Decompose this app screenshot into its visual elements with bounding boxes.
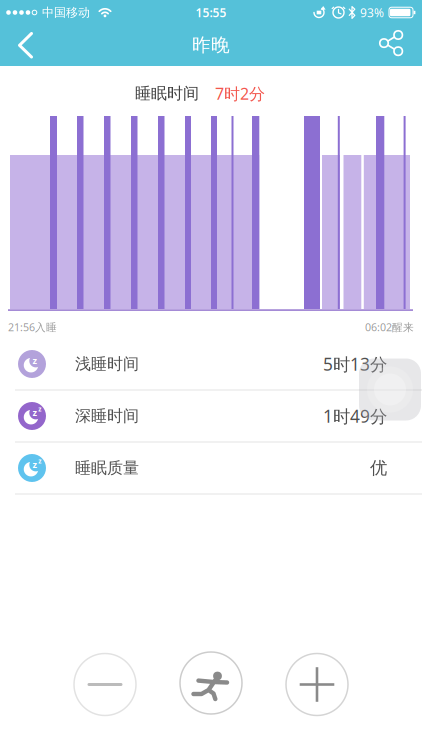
button[interactable]: Remove [74, 653, 136, 715]
staticText: 优 [370, 457, 387, 479]
button[interactable]: Activity [180, 652, 242, 714]
staticText: 浅睡时间 [75, 354, 139, 374]
staticText: z [32, 406, 37, 419]
staticText: z [32, 354, 37, 367]
button[interactable]: Back [3, 23, 47, 67]
staticText: 06:02醒来 [365, 320, 414, 334]
button[interactable]: AssistiveTouch [359, 358, 421, 420]
staticText: 21:56入睡 [8, 320, 57, 334]
staticText: z [38, 404, 41, 413]
staticText: z [32, 458, 37, 471]
staticText: 睡眠质量 [75, 458, 139, 478]
staticText: 昨晚 [192, 33, 230, 56]
staticText: 中国移动 [42, 5, 90, 20]
staticText: 15:55 [195, 4, 226, 20]
staticText: 睡眠时间 [135, 84, 199, 103]
staticText: 深睡时间 [75, 406, 139, 426]
staticText: 7时2分 [215, 83, 265, 104]
button[interactable]: Add [286, 653, 348, 715]
staticText: 93% [360, 4, 384, 20]
button[interactable]: Share [370, 21, 414, 65]
staticText: 1时49分 [323, 404, 387, 427]
staticText: 5时13分 [323, 352, 387, 375]
staticText: z [38, 456, 41, 465]
